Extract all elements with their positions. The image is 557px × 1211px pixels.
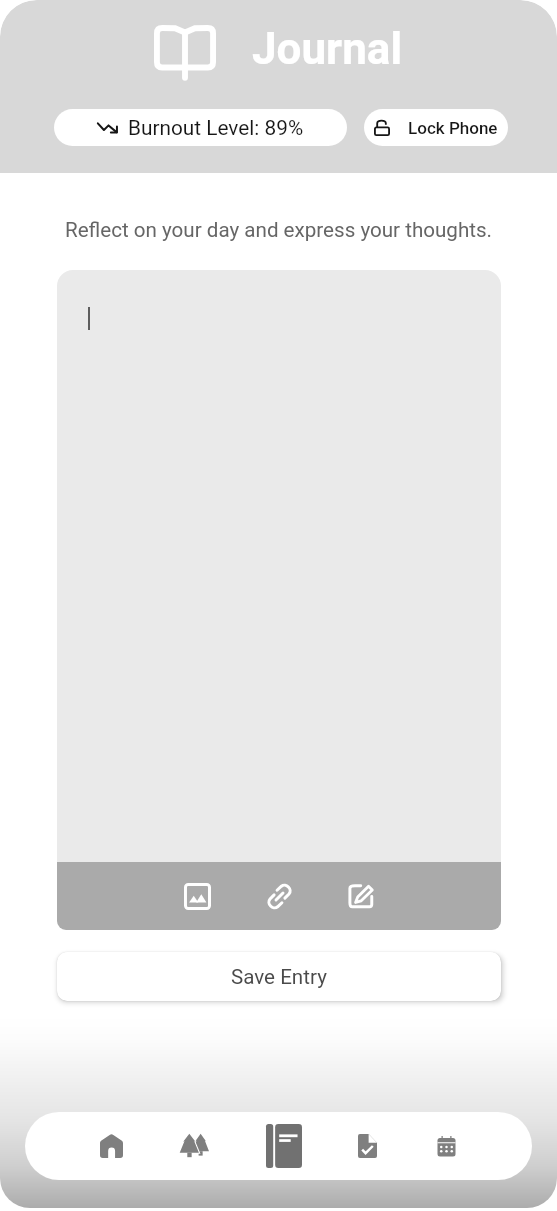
button[interactable]: Home (69, 1112, 153, 1180)
staticText: Save Entry (231, 965, 327, 989)
button[interactable]: Calendar (405, 1112, 489, 1180)
staticText: Journal (252, 23, 403, 75)
button[interactable]: Journal (237, 1112, 321, 1180)
button[interactable]: Tasks (321, 1112, 405, 1180)
button[interactable]: Add link (259, 876, 299, 916)
staticText: Burnout Level: 89% (128, 116, 304, 140)
button[interactable]: Lock Phone (364, 109, 508, 146)
staticText: Lock Phone (408, 118, 498, 138)
staticText: Reflect on your day and express your tho… (0, 218, 557, 242)
button[interactable]: Edit (341, 876, 381, 916)
button[interactable]: Save Entry (57, 952, 501, 1001)
button[interactable]: Add image (177, 876, 217, 916)
button[interactable]: Burnout Level: 89% (54, 109, 347, 146)
button[interactable]: Forest (153, 1112, 237, 1180)
